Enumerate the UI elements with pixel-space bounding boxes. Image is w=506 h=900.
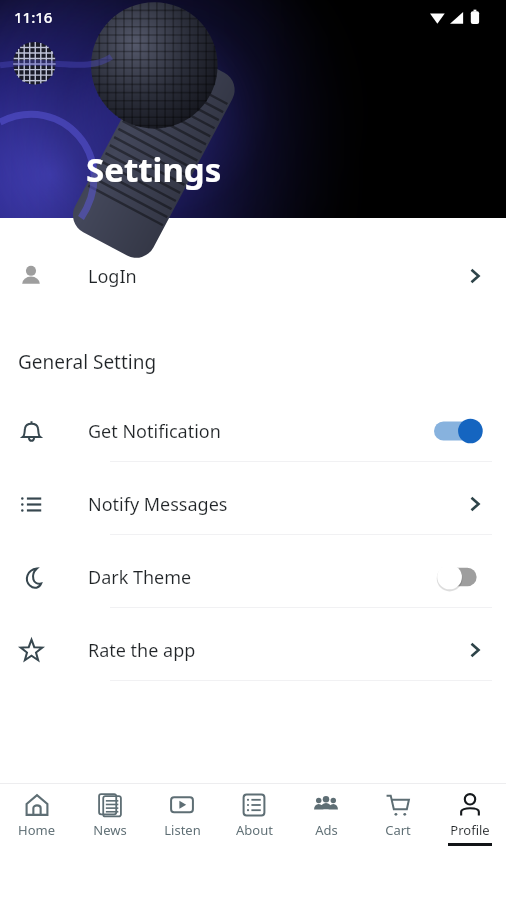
button[interactable]: LogIn <box>0 248 506 304</box>
button[interactable]: Listen <box>146 784 218 852</box>
button[interactable]: Notify Messages <box>0 474 506 547</box>
staticText: Dark Theme <box>88 565 192 590</box>
staticText: Rate the app <box>88 638 196 663</box>
staticText: Home <box>18 821 55 839</box>
staticText: About <box>236 821 273 839</box>
staticText: Cart <box>385 821 411 839</box>
button[interactable]: About <box>218 784 290 852</box>
staticText: Notify Messages <box>88 492 228 517</box>
button[interactable]: Cart <box>362 784 434 852</box>
button[interactable]: Dark Theme <box>0 547 506 620</box>
button[interactable]: Home <box>0 784 73 852</box>
staticText: 11:16 <box>14 7 53 27</box>
staticText: Settings <box>86 147 222 192</box>
staticText: General Setting <box>18 349 157 375</box>
button[interactable]: News <box>73 784 146 852</box>
staticText: Listen <box>164 821 201 839</box>
button[interactable]: Profile <box>434 784 506 852</box>
staticText: News <box>93 821 127 839</box>
staticText: Profile <box>450 821 490 839</box>
button[interactable]: Get Notification <box>0 401 506 474</box>
button[interactable]: Ads <box>290 784 362 852</box>
button[interactable]: Rate the app <box>0 620 506 693</box>
staticText: Get Notification <box>88 419 221 444</box>
staticText: Ads <box>315 821 338 839</box>
staticText: LogIn <box>88 264 137 289</box>
